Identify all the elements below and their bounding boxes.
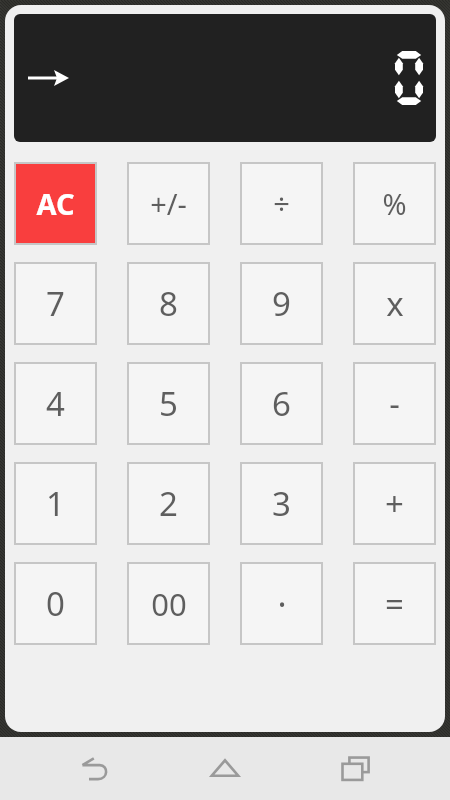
staticText: 1 — [46, 481, 65, 526]
button[interactable]: 3 — [240, 462, 323, 545]
button[interactable]: +/- — [127, 162, 210, 245]
staticText: ÷ — [273, 184, 290, 223]
button[interactable]: 8 — [127, 262, 210, 345]
staticText: AC — [36, 184, 75, 223]
staticText: % — [382, 184, 407, 223]
staticText: 6 — [272, 381, 291, 426]
staticText: - — [389, 381, 400, 426]
staticText: = — [385, 581, 404, 626]
staticText: + — [385, 481, 404, 526]
staticText: 00 — [151, 583, 187, 625]
button[interactable]: ÷ — [240, 162, 323, 245]
button[interactable]: 00 — [127, 562, 210, 645]
button[interactable]: 7 — [14, 262, 97, 345]
staticText: 3 — [272, 481, 291, 526]
button[interactable]: % — [353, 162, 436, 245]
staticText: 0 — [46, 581, 65, 626]
staticText: 7 — [46, 281, 65, 326]
button[interactable]: 0 — [14, 562, 97, 645]
staticText: 2 — [159, 481, 178, 526]
button[interactable]: - — [353, 362, 436, 445]
button[interactable]: = — [353, 562, 436, 645]
button[interactable]: 2 — [127, 462, 210, 545]
button[interactable]: 1 — [14, 462, 97, 545]
button[interactable]: Recent apps — [320, 744, 392, 794]
button[interactable]: Back — [59, 744, 131, 794]
staticText: 4 — [46, 381, 65, 426]
staticText: 9 — [272, 281, 291, 326]
button[interactable]: Home — [189, 744, 261, 794]
staticText: 5 — [159, 381, 178, 426]
button[interactable]: · — [240, 562, 323, 645]
button[interactable]: 5 — [127, 362, 210, 445]
staticText: · — [277, 581, 287, 627]
button[interactable]: AC — [14, 162, 97, 245]
button[interactable]: 6 — [240, 362, 323, 445]
button[interactable]: x — [353, 262, 436, 345]
staticText: 8 — [159, 281, 178, 326]
button[interactable]: + — [353, 462, 436, 545]
staticText: +/- — [150, 184, 187, 223]
other: Backspace — [26, 68, 70, 88]
button[interactable]: 9 — [240, 262, 323, 345]
button[interactable]: 4 — [14, 362, 97, 445]
staticText: x — [386, 281, 404, 326]
